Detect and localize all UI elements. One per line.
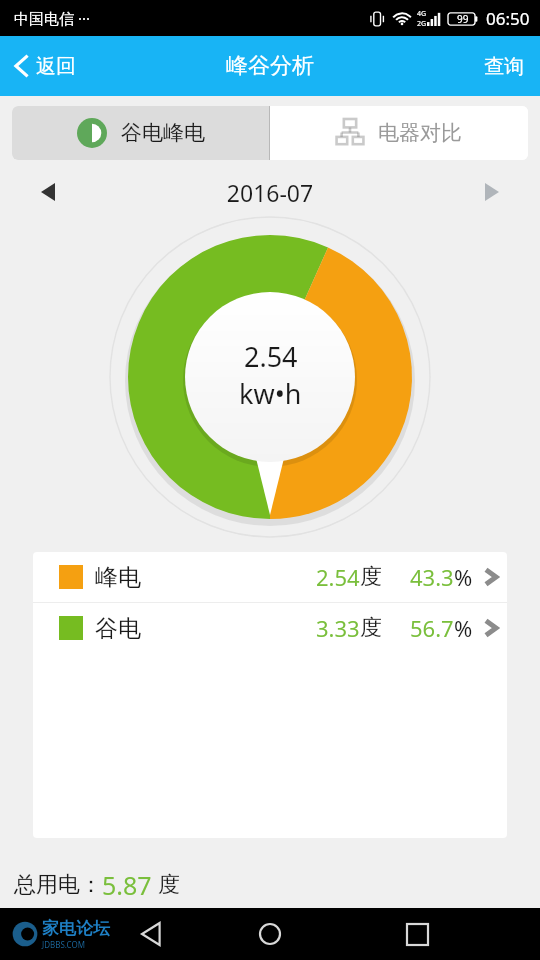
button[interactable]: 电器对比 (270, 106, 528, 160)
staticText: 峰电 (95, 563, 141, 592)
staticText: 度 (360, 614, 382, 642)
staticText: kw•h (239, 375, 302, 412)
staticText: 3.33 (316, 613, 360, 643)
staticText: 5.87 (102, 868, 152, 902)
staticText: 返回 (36, 54, 76, 79)
button[interactable]: Back (130, 911, 176, 957)
staticText: 度 (360, 563, 382, 591)
button[interactable]: 峰电 (33, 552, 507, 602)
staticText: 中国电信 ··· (14, 8, 90, 28)
staticText: 家电论坛 (42, 918, 110, 939)
button[interactable]: 返回 (0, 45, 90, 87)
staticText: 43.3 (410, 562, 454, 592)
staticText: 2016-07 (68, 177, 472, 208)
staticText: 总用电： (14, 871, 102, 899)
staticText: 峰谷分析 (226, 52, 314, 80)
button[interactable]: 谷电峰电 (12, 106, 269, 160)
staticText: 2.54 (244, 338, 298, 375)
button[interactable]: Next month (472, 172, 512, 212)
staticText: 06:50 (486, 7, 530, 30)
staticText: 度 (158, 871, 180, 899)
staticText: % (454, 613, 473, 643)
staticText: JDBBS.COM (42, 939, 85, 950)
button[interactable]: 谷电 (33, 603, 507, 653)
button[interactable]: Home (247, 911, 293, 957)
staticText: 谷电 (95, 614, 141, 643)
button[interactable]: Recent apps (394, 911, 440, 957)
staticText: 谷电峰电 (121, 120, 205, 146)
staticText: 2.54 (316, 562, 360, 592)
staticText: 99 (457, 12, 469, 26)
staticText: 56.7 (410, 613, 454, 643)
button[interactable]: Previous month (28, 172, 68, 212)
staticText: 2G (417, 19, 427, 29)
staticText: % (454, 562, 473, 592)
button[interactable]: 查询 (468, 44, 540, 89)
staticText: 4G (417, 9, 427, 19)
staticText: 电器对比 (378, 120, 462, 146)
